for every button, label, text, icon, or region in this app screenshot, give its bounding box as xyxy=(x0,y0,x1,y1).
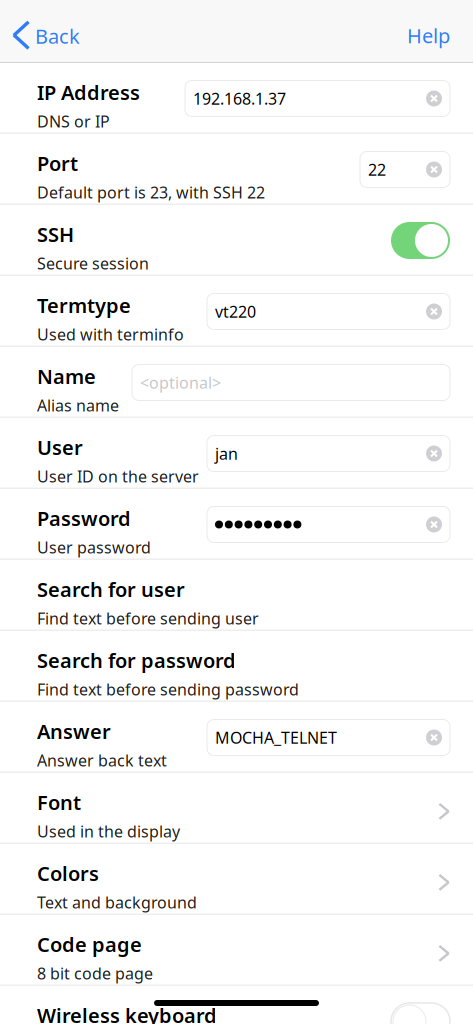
staticText: User password xyxy=(37,537,151,558)
button[interactable]: Clear text xyxy=(426,445,442,461)
button[interactable]: SSH xyxy=(0,205,473,276)
staticText: Port xyxy=(37,150,78,177)
staticText: Find text before sending user xyxy=(37,608,259,629)
staticText: Answer xyxy=(37,718,111,745)
staticText: vt220 xyxy=(215,301,256,322)
button[interactable]: Name xyxy=(0,347,473,418)
staticText: DNS or IP xyxy=(37,111,110,132)
button[interactable]: Clear text xyxy=(426,729,442,745)
staticText: User ID on the server xyxy=(37,466,199,487)
button[interactable]: Colors xyxy=(0,844,473,915)
staticText: 8 bit code page xyxy=(37,963,153,984)
staticText: Password xyxy=(37,505,131,532)
button[interactable]: Font xyxy=(0,773,473,844)
staticText: Find text before sending password xyxy=(37,679,299,700)
staticText: Termtype xyxy=(37,292,131,319)
staticText: Text and background xyxy=(37,892,197,913)
button[interactable]: Search for password xyxy=(0,631,473,702)
button[interactable]: User xyxy=(0,418,473,489)
staticText: Code page xyxy=(37,931,142,958)
staticText: Alias name xyxy=(37,395,119,416)
button[interactable]: IP Address xyxy=(0,63,473,134)
staticText: Back xyxy=(35,23,80,49)
button[interactable]: Clear text xyxy=(426,90,442,106)
staticText: 22 xyxy=(368,159,386,180)
staticText: SSH xyxy=(37,221,74,248)
staticText: Help xyxy=(407,22,450,49)
staticText: Secure session xyxy=(37,253,149,274)
staticText: Default port is 23, with SSH 22 xyxy=(37,182,265,203)
button[interactable]: Password xyxy=(0,489,473,560)
button[interactable]: Code page xyxy=(0,915,473,986)
button[interactable]: Clear text xyxy=(426,161,442,177)
staticText: IP Address xyxy=(37,79,140,106)
button[interactable]: Back xyxy=(0,0,92,63)
staticText: Colors xyxy=(37,860,99,887)
button[interactable]: Clear text xyxy=(426,303,442,319)
staticText: <optional> xyxy=(140,372,221,393)
staticText: Used with terminfo xyxy=(37,324,184,345)
button[interactable]: Search for user xyxy=(0,560,473,631)
staticText: User xyxy=(37,434,83,461)
staticText: MOCHA_TELNET xyxy=(215,727,337,748)
staticText: jan xyxy=(215,443,238,464)
button[interactable]: Termtype xyxy=(0,276,473,347)
staticText: Name xyxy=(37,363,96,390)
staticText: Wireless keyboard xyxy=(37,1002,217,1024)
staticText: Answer back text xyxy=(37,750,167,771)
button[interactable]: Help xyxy=(391,0,473,63)
button[interactable]: Port xyxy=(0,134,473,205)
staticText: Search for password xyxy=(37,647,236,674)
staticText: Used in the display xyxy=(37,821,180,842)
staticText: 192.168.1.37 xyxy=(193,88,286,109)
button[interactable]: Wireless keyboard xyxy=(0,986,473,1024)
button[interactable]: Answer xyxy=(0,702,473,773)
staticText: Font xyxy=(37,789,81,816)
button[interactable]: Clear text xyxy=(426,516,442,532)
staticText: Search for user xyxy=(37,576,185,603)
